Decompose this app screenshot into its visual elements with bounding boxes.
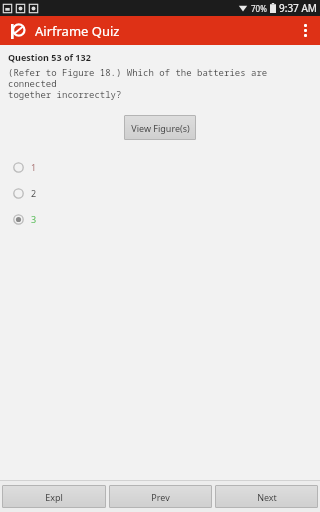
staticText: 2 xyxy=(31,187,37,199)
staticText: 1 xyxy=(31,161,37,173)
button[interactable]: 1 xyxy=(0,154,320,180)
button[interactable]: More options xyxy=(290,16,320,45)
button[interactable]: View Figure(s) xyxy=(124,115,196,140)
staticText: 70% xyxy=(251,3,267,14)
button[interactable]: Expl xyxy=(2,485,106,508)
staticText: 9:37 AM xyxy=(279,1,317,15)
staticText: Next xyxy=(257,491,277,503)
staticText: 3 xyxy=(31,213,37,225)
staticText: Airframe Quiz xyxy=(35,22,120,40)
button[interactable]: 3 xyxy=(0,206,320,232)
staticText: View Figure(s) xyxy=(131,122,190,134)
staticText: Question 53 of 132 xyxy=(8,51,91,63)
staticText: (Refer to Figure 18.) Which of the batte… xyxy=(8,66,312,100)
staticText: Prev xyxy=(151,491,170,503)
button[interactable]: Next xyxy=(215,485,318,508)
button[interactable]: Prev xyxy=(109,485,212,508)
button[interactable]: 2 xyxy=(0,180,320,206)
staticText: Expl xyxy=(45,491,63,503)
